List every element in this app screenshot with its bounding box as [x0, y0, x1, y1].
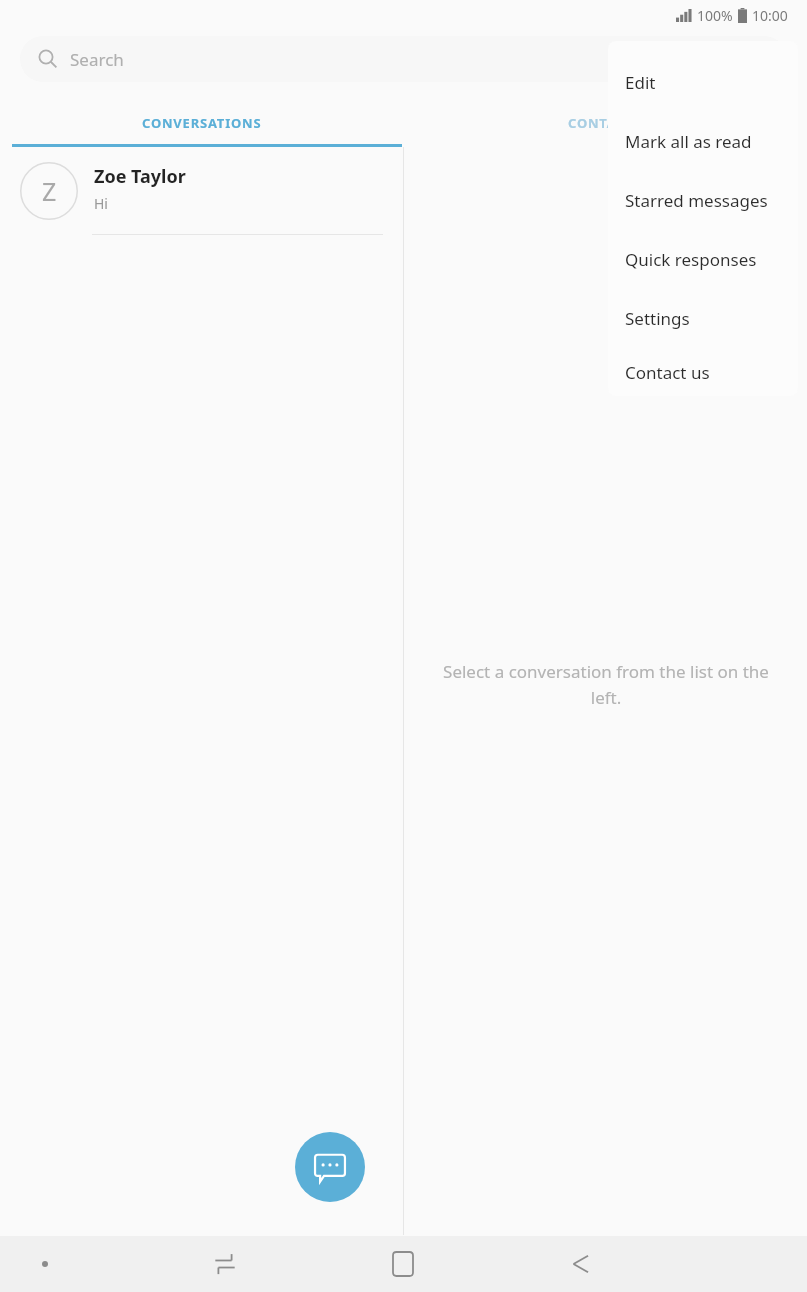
staticText: Hi: [94, 194, 108, 213]
staticText: 100%: [697, 6, 733, 25]
button[interactable]: CONVERSATIONS: [0, 100, 403, 146]
staticText: 10:00: [752, 6, 788, 25]
staticText: Settings: [625, 307, 690, 330]
staticText: Z: [42, 174, 57, 208]
button[interactable]: Edit: [608, 53, 798, 112]
button[interactable]: New conversation: [295, 1132, 365, 1202]
button[interactable]: Menu indicator: [10, 1236, 80, 1292]
button[interactable]: Recents: [180, 1236, 270, 1292]
button[interactable]: Z: [0, 148, 403, 234]
button[interactable]: Quick responses: [608, 230, 798, 289]
staticText: Zoe Taylor: [94, 164, 186, 189]
staticText: CONTACTS: [568, 114, 642, 132]
staticText: Contact us: [625, 361, 710, 384]
staticText: Edit: [625, 71, 656, 94]
button[interactable]: Search: [20, 36, 787, 82]
button[interactable]: Home: [358, 1236, 448, 1292]
staticText: Mark all as read: [625, 130, 752, 153]
staticText: Select a conversation from the list on t…: [436, 660, 776, 709]
button[interactable]: Back: [536, 1236, 626, 1292]
button[interactable]: Settings: [608, 289, 798, 348]
staticText: Quick responses: [625, 248, 757, 271]
button[interactable]: Starred messages: [608, 171, 798, 230]
staticText: CONVERSATIONS: [142, 114, 262, 132]
staticText: Starred messages: [625, 189, 768, 212]
button[interactable]: Contact us: [608, 348, 798, 396]
button[interactable]: Mark all as read: [608, 112, 798, 171]
staticText: Search: [70, 48, 124, 71]
button[interactable]: CONTACTS: [403, 100, 807, 146]
